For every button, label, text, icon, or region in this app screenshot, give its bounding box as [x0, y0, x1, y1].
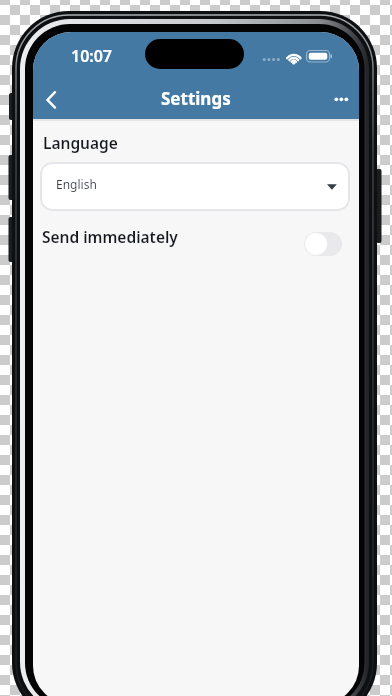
button[interactable] [304, 232, 342, 256]
staticText: Language [43, 132, 118, 153]
staticText: Send immediately [42, 226, 178, 247]
button[interactable]: English [40, 162, 350, 211]
staticText: English [56, 176, 97, 192]
button[interactable] [37, 86, 69, 116]
staticText: Settings [161, 87, 231, 110]
button[interactable] [326, 88, 356, 111]
staticText: 10:07 [71, 45, 113, 65]
